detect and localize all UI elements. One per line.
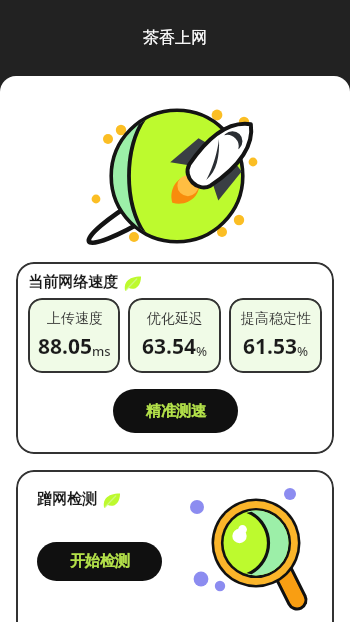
staticText: 优化延迟 [147, 310, 203, 328]
staticText: 61.53 [243, 332, 297, 361]
staticText: 88.05 [38, 332, 92, 361]
staticText: 茶香上网 [143, 28, 207, 48]
staticText: % [297, 342, 309, 360]
staticText: 上传速度 [47, 310, 103, 328]
staticText: 开始检测 [70, 552, 130, 571]
button[interactable]: 开始检测 [37, 542, 162, 581]
staticText: % [196, 342, 208, 360]
staticText: 精准测速 [146, 402, 206, 421]
staticText: 63.54 [142, 332, 196, 361]
staticText: ms [92, 342, 111, 360]
staticText: 提高稳定性 [241, 310, 311, 328]
staticText: 蹭网检测 [37, 490, 97, 509]
staticText: 当前网络速度 [28, 273, 118, 292]
button[interactable]: 精准测速 [113, 389, 238, 433]
